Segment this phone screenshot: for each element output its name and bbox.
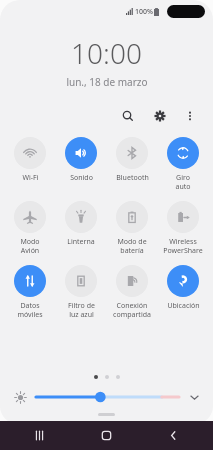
button[interactable]: Settings bbox=[149, 105, 171, 127]
staticText: Datos móviles bbox=[17, 301, 43, 319]
button[interactable]: Giro auto bbox=[158, 137, 208, 191]
button[interactable]: Recent apps bbox=[12, 421, 67, 450]
button[interactable]: Wi-Fi bbox=[5, 137, 55, 183]
staticText: Conexión compartida bbox=[113, 301, 151, 319]
button[interactable]: Filtro de luz azul bbox=[56, 265, 106, 319]
button[interactable] bbox=[36, 390, 179, 404]
staticText: Bluetooth bbox=[116, 173, 149, 183]
button[interactable]: Wireless PowerShare bbox=[158, 201, 208, 255]
staticText: 100% bbox=[135, 7, 153, 17]
button[interactable]: Datos móviles bbox=[5, 265, 55, 319]
button[interactable]: Linterna bbox=[56, 201, 106, 247]
button[interactable]: More options bbox=[179, 105, 201, 127]
button[interactable]: Conexión compartida bbox=[107, 265, 157, 319]
staticText: 10:00 bbox=[71, 34, 142, 72]
button[interactable]: Home bbox=[79, 421, 134, 450]
button[interactable]: Modo Avión bbox=[5, 201, 55, 255]
button[interactable]: Expand brightness settings bbox=[187, 390, 201, 404]
staticText: Wireless PowerShare bbox=[163, 237, 203, 255]
staticText: Linterna bbox=[67, 237, 95, 247]
staticText: Sonido bbox=[70, 173, 93, 183]
staticText: Filtro de luz azul bbox=[68, 301, 95, 319]
staticText: Giro auto bbox=[175, 173, 191, 191]
button[interactable]: Ubicación bbox=[158, 265, 208, 311]
staticText: Modo Avión bbox=[20, 237, 40, 255]
button[interactable]: Bluetooth bbox=[107, 137, 157, 183]
button[interactable]: Back bbox=[146, 421, 201, 450]
other: Brightness bbox=[12, 389, 28, 405]
staticText: lun., 18 de marzo bbox=[66, 75, 148, 89]
button[interactable]: Sonido bbox=[56, 137, 106, 183]
button[interactable]: Modo de batería bbox=[107, 201, 157, 255]
staticText: Modo de batería bbox=[117, 237, 147, 255]
button[interactable]: Search bbox=[117, 105, 139, 127]
staticText: Wi-Fi bbox=[22, 173, 39, 183]
staticText: Ubicación bbox=[167, 301, 200, 311]
